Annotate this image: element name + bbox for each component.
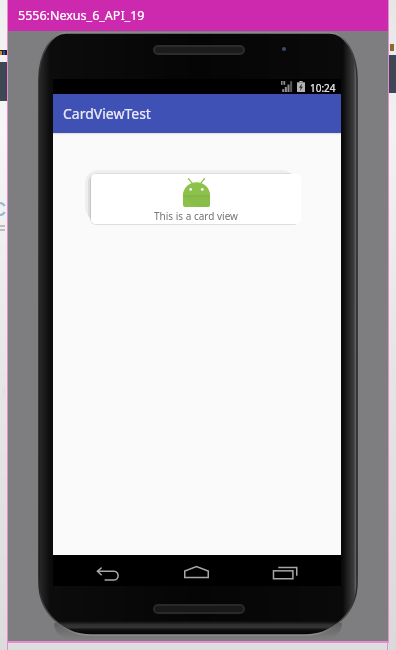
button[interactable]: Back: [89, 560, 125, 585]
staticText: 10:24: [310, 81, 336, 92]
staticText: 5556:Nexus_6_API_19: [18, 7, 145, 24]
staticText: This is a card view: [154, 209, 238, 223]
button[interactable]: Recent apps: [267, 560, 302, 585]
button[interactable]: 5556:Nexus_6_API_19: [8, 0, 388, 31]
button[interactable]: This is a card view: [91, 174, 301, 224]
staticText: CardViewTest: [63, 104, 151, 123]
button[interactable]: Home: [179, 559, 214, 584]
